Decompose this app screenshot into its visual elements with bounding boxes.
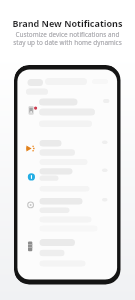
staticText: Customize device notifications and stay … <box>0 30 135 47</box>
button[interactable] <box>14 65 121 285</box>
staticText: Brand New Notifications <box>0 17 135 29</box>
